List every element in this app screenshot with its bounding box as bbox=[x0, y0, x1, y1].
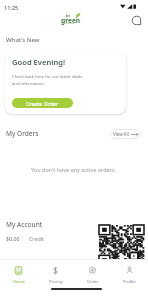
button[interactable]: View All bbox=[110, 129, 141, 139]
button[interactable]: Pricing bbox=[37, 260, 74, 286]
staticText: Profile bbox=[123, 279, 136, 285]
staticText: My Account bbox=[6, 220, 43, 229]
staticText: Check back here for our latest deals and… bbox=[12, 74, 83, 86]
staticText: Order bbox=[87, 279, 99, 285]
staticText: Good Evening! bbox=[12, 57, 66, 67]
staticText: be bbox=[66, 13, 71, 18]
button[interactable]: Order bbox=[74, 260, 111, 286]
button[interactable]: Home bbox=[0, 260, 37, 286]
staticText: Create Order bbox=[26, 100, 59, 107]
staticText: View All bbox=[113, 131, 129, 137]
staticText: What's New bbox=[6, 35, 40, 43]
staticText: Credit bbox=[29, 235, 44, 242]
button[interactable]: Create Order bbox=[12, 98, 73, 108]
staticText: My Orders bbox=[6, 129, 39, 138]
button[interactable]: Chat support bbox=[128, 12, 144, 28]
staticText: waste services bbox=[61, 22, 74, 25]
staticText: You don't have any active orders. bbox=[31, 166, 117, 173]
staticText: Pricing bbox=[49, 279, 63, 285]
staticText: green bbox=[61, 16, 81, 25]
staticText: Home bbox=[13, 279, 25, 285]
button[interactable]: Profile bbox=[111, 260, 148, 286]
staticText: 11:25 bbox=[4, 4, 19, 12]
staticText: $0.00 bbox=[6, 235, 20, 242]
